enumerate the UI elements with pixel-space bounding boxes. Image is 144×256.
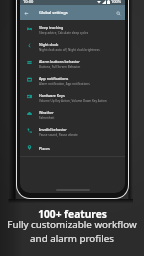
staticText: Buttons, Full Screen Behavior xyxy=(39,65,81,69)
staticText: Night clock xyxy=(39,42,59,47)
staticText: Volume Up Key Action, Volume Down Key Ac… xyxy=(39,99,107,103)
button[interactable]: Weather xyxy=(20,105,125,122)
staticText: App notifications xyxy=(39,76,69,81)
staticText: Alarm buttons behavior xyxy=(39,59,80,64)
staticText: Alarm notification, App notifications xyxy=(39,82,90,86)
staticText: 100% xyxy=(111,0,122,4)
staticText: Fully customizable workflow xyxy=(7,218,137,231)
button[interactable]: Places xyxy=(20,139,125,156)
staticText: and alarm profiles xyxy=(30,232,114,245)
button[interactable]: App notifications xyxy=(20,71,125,88)
button[interactable]: Invalid behavior xyxy=(20,122,125,139)
staticText: Places xyxy=(39,146,50,151)
staticText: Global settings xyxy=(39,10,68,15)
button[interactable]: Alarm buttons behavior xyxy=(20,54,125,71)
staticText: Pause sound, Pause vibrate xyxy=(39,133,78,137)
button[interactable]: Night clock xyxy=(20,37,125,54)
staticText: Invalid behavior xyxy=(39,127,67,132)
button[interactable]: Hardware Keys xyxy=(20,88,125,105)
staticText: Night clock auto off, Night clock bright… xyxy=(39,48,100,52)
staticText: 10:00 xyxy=(23,0,34,4)
staticText: 100+ features xyxy=(38,207,107,221)
staticText: Fahrenheit xyxy=(39,116,55,120)
staticText: Sleep advice, Calculate sleep cycles xyxy=(39,31,89,35)
button[interactable]: Search xyxy=(111,6,125,20)
button[interactable]: Back xyxy=(20,6,33,20)
staticText: Weather xyxy=(39,110,54,115)
button[interactable]: Sleep tracking xyxy=(20,20,125,37)
staticText: Sleep tracking xyxy=(39,25,64,30)
staticText: Hardware Keys xyxy=(39,93,65,98)
